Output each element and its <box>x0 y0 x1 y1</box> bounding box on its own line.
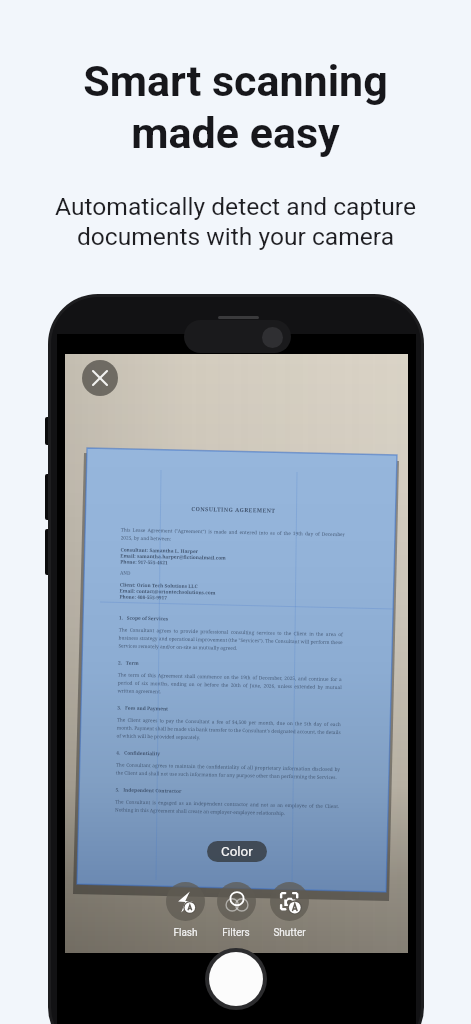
button[interactable]: Color <box>207 841 267 862</box>
button[interactable]: Flash <box>159 882 211 939</box>
staticText: The Consultant agrees to provide profess… <box>118 626 343 654</box>
staticText: Color <box>221 844 253 860</box>
staticText: The Consultant agrees to maintain the co… <box>116 761 340 781</box>
staticText: The term of this Agreement shall commenc… <box>117 671 342 699</box>
staticText: The Consultant is engaged as an independ… <box>115 798 339 818</box>
staticText: 4. Confidentiality <box>116 749 160 756</box>
staticText: 1. Scope of Services <box>119 614 169 621</box>
staticText: Email: samantha.harper@fictionalmail.com <box>120 552 226 561</box>
staticText: Filters <box>222 927 250 939</box>
staticText: Phone: 917-555-4621 <box>120 558 168 565</box>
staticText: Email: contact@oriontechsolutions.com <box>120 587 216 595</box>
staticText: CONSULTING AGREEMENT <box>121 503 345 516</box>
staticText: Shutter <box>273 927 306 939</box>
staticText: 5. Independent Contractor <box>115 786 181 794</box>
staticText: 2. Term <box>118 659 139 666</box>
staticText: Consultant: Samantha L. Harper <box>120 546 198 554</box>
button[interactable]: Shutter <box>263 882 315 939</box>
staticText: Smart scanning made easy <box>83 56 388 159</box>
staticText: This Lease Agreement ("Agreement") is ma… <box>121 526 345 546</box>
staticText: Flash <box>173 927 198 939</box>
staticText: The Client agrees to pay the Consultant … <box>116 716 341 744</box>
staticText: Client: Orion Tech Solutions LLC <box>120 581 198 589</box>
button[interactable]: Filters <box>210 882 262 939</box>
button[interactable]: Home <box>209 952 263 1006</box>
staticText: Automatically detect and capture documen… <box>55 192 416 251</box>
staticText: Phone: 408-555-9917 <box>119 593 168 600</box>
staticText: 3. Fees and Payment <box>117 704 168 712</box>
button[interactable]: Close <box>82 360 118 396</box>
staticText: AND <box>120 569 131 576</box>
